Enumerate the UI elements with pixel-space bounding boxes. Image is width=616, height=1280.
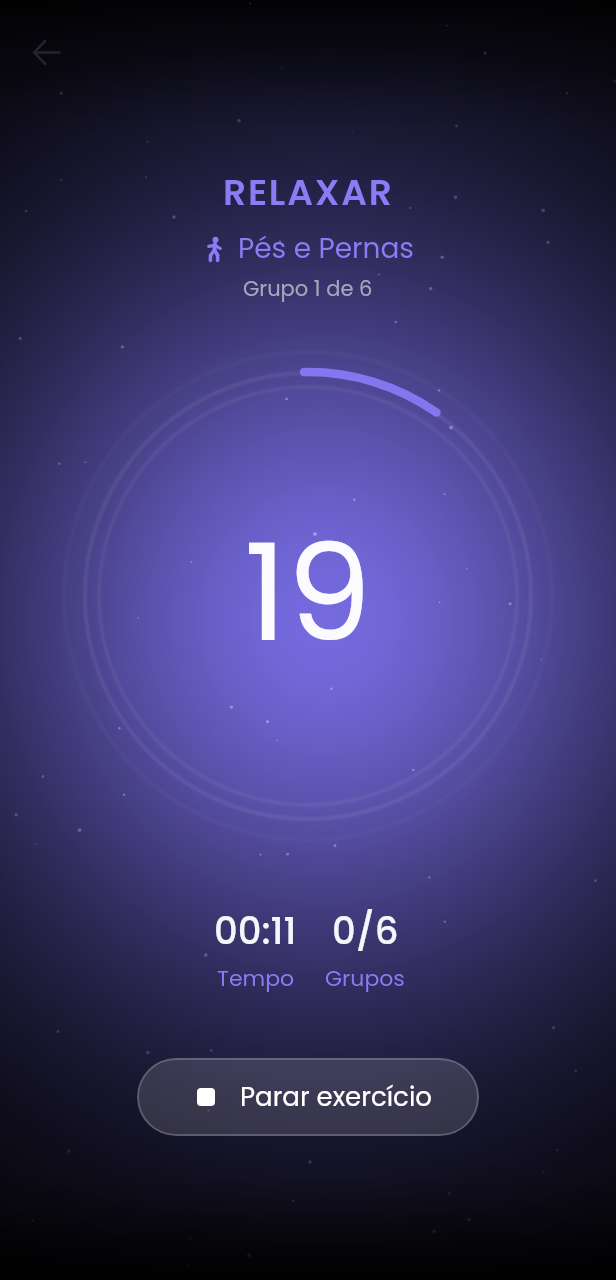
staticText: Parar exercício [240, 1079, 432, 1115]
button[interactable]: Voltar [23, 29, 69, 75]
staticText: Tempo [217, 963, 295, 994]
button[interactable]: Parar exercício [137, 1058, 479, 1136]
staticText: 00:11 [214, 905, 297, 957]
staticText: Grupos [325, 963, 405, 994]
staticText: Pés e Pernas [238, 229, 414, 268]
staticText: 0/6 [332, 905, 399, 957]
staticText: Grupo 1 de 6 [243, 274, 373, 303]
staticText: 19 [244, 499, 372, 687]
staticText: RELAXAR [223, 167, 394, 217]
